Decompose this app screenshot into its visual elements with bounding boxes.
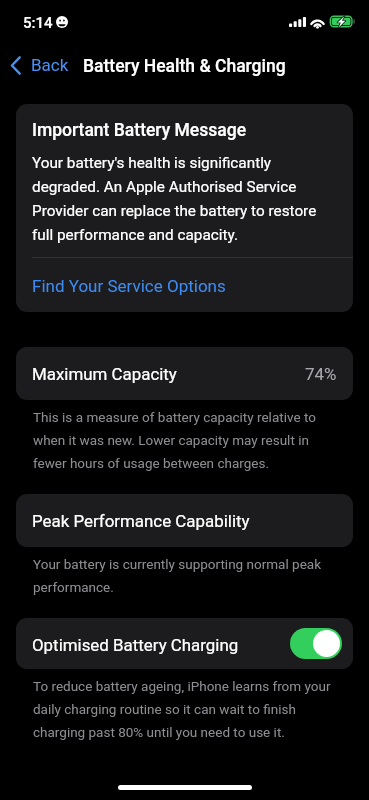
- button[interactable]: Peak Performance Capability: [16, 494, 353, 547]
- button[interactable]: Optimised Battery Charging: [290, 628, 342, 659]
- staticText: Battery Health & Charging: [83, 56, 286, 77]
- staticText: Find Your Service Options: [32, 276, 226, 296]
- staticText: To reduce battery ageing, iPhone learns …: [33, 673, 335, 742]
- staticText: Your battery's health is significantly d…: [32, 149, 328, 245]
- button[interactable]: Find Your Service Options: [16, 257, 353, 312]
- button[interactable]: Maximum Capacity: [16, 347, 353, 400]
- staticText: This is a measure of battery capacity re…: [33, 404, 335, 473]
- staticText: Your battery is currently supporting nor…: [33, 551, 335, 597]
- staticText: Maximum Capacity: [32, 364, 177, 384]
- staticText: Back: [31, 55, 69, 75]
- button[interactable]: Back: [2, 50, 74, 82]
- staticText: Peak Performance Capability: [32, 511, 250, 531]
- staticText: Optimised Battery Charging: [32, 635, 239, 655]
- staticText: Important Battery Message: [32, 119, 247, 141]
- staticText: 74%: [305, 364, 337, 384]
- staticText: 5:14: [23, 14, 53, 32]
